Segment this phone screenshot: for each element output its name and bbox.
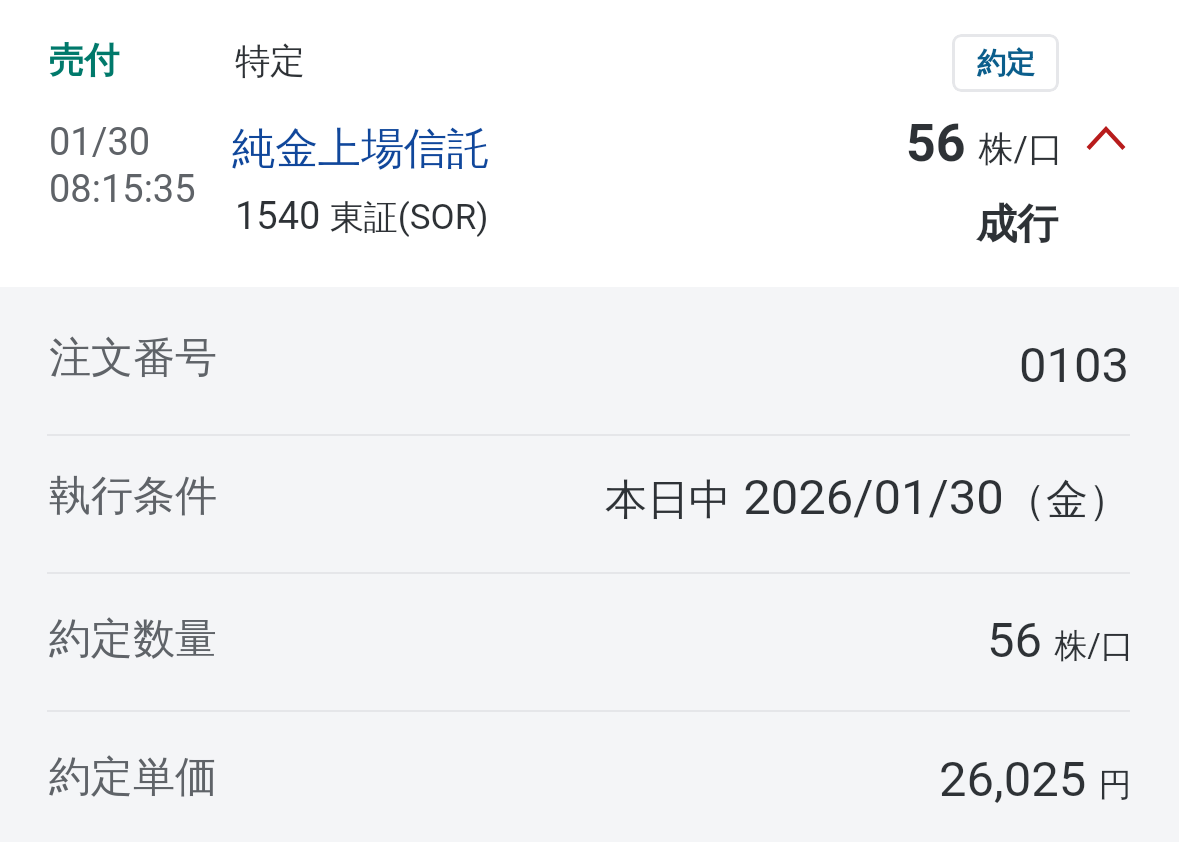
button[interactable]: 純金上場信託	[230, 118, 492, 174]
button[interactable]: 約定数量	[0, 573, 1179, 711]
staticText: 約定単価	[49, 751, 217, 804]
button[interactable]: 約定	[952, 34, 1059, 92]
staticText: 売付	[49, 38, 119, 82]
button[interactable]: 約定単価	[0, 711, 1179, 842]
button[interactable]: 売付	[0, 0, 1179, 287]
button[interactable]: 明細を折りたたむ	[1071, 112, 1141, 168]
staticText: 本日中 2026/01/30（金）	[605, 469, 1130, 527]
staticText: 56 株/口	[906, 113, 1064, 174]
button[interactable]: 注文番号	[0, 287, 1179, 435]
staticText: 約定数量	[49, 613, 217, 666]
staticText: 1540 東証(SOR)	[235, 194, 489, 239]
staticText: 約定	[977, 45, 1035, 82]
staticText: 成行	[976, 199, 1058, 251]
staticText: 08:15:35	[49, 167, 196, 212]
staticText: 執行条件	[49, 470, 217, 523]
staticText: 0103	[1019, 337, 1130, 394]
staticText: 特定	[235, 39, 305, 83]
staticText: 56 株/口	[987, 612, 1134, 669]
staticText: 注文番号	[49, 332, 217, 385]
staticText: 26,025 円	[939, 751, 1132, 808]
staticText: 純金上場信託	[232, 122, 490, 176]
button[interactable]: 執行条件	[0, 435, 1179, 573]
staticText: 01/30	[49, 120, 151, 165]
